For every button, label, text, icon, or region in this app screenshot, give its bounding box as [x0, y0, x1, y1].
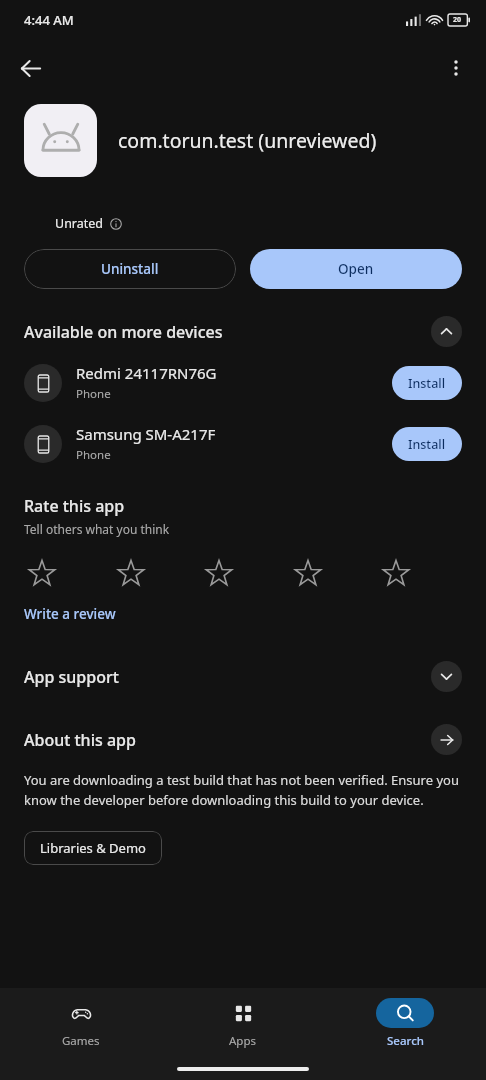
staticText: Samsung SM-A217F: [76, 424, 216, 444]
staticText: Tell others what you think: [24, 521, 170, 537]
staticText: 4:44 AM: [24, 11, 74, 29]
button[interactable]: Rate 4 star: [290, 555, 326, 591]
staticText: App support: [24, 666, 431, 688]
staticText: Install: [408, 375, 446, 392]
button[interactable]: Back: [10, 48, 50, 88]
staticText: About this app: [24, 729, 431, 751]
button[interactable]: App support: [0, 661, 486, 692]
button[interactable]: Samsung SM-A217F: [0, 424, 486, 463]
staticText: Apps: [229, 1033, 257, 1049]
button[interactable]: Expand app support: [431, 661, 462, 692]
staticText: Available on more devices: [24, 321, 431, 343]
staticText: You are downloading a test build that ha…: [24, 771, 462, 809]
button[interactable]: Rate 1 star: [24, 555, 60, 591]
staticText: Phone: [76, 447, 111, 463]
button[interactable]: Install: [392, 427, 462, 461]
button[interactable]: Rate 5 star: [378, 555, 414, 591]
button[interactable]: Apps: [162, 998, 324, 1049]
button[interactable]: Libraries & Demo: [24, 831, 162, 865]
button[interactable]: Uninstall: [24, 249, 236, 289]
staticText: com.torun.test (unreviewed): [118, 127, 377, 154]
button[interactable]: Open: [250, 249, 462, 289]
staticText: 20: [453, 15, 462, 25]
staticText: Install: [408, 436, 446, 453]
staticText: Open: [338, 260, 374, 278]
staticText: Libraries & Demo: [40, 839, 146, 857]
button[interactable]: Write a review: [24, 605, 116, 623]
button[interactable]: Rate 2 star: [113, 555, 149, 591]
button[interactable]: Redmi 24117RN76G: [0, 363, 486, 402]
button[interactable]: Available on more devices: [0, 316, 486, 347]
staticText: Search: [387, 1033, 424, 1049]
button[interactable]: Search: [324, 998, 486, 1049]
staticText: Uninstall: [101, 260, 159, 278]
button[interactable]: About this app: [431, 724, 462, 755]
staticText: Write a review: [24, 605, 116, 623]
button[interactable]: Rate 3 star: [201, 555, 237, 591]
staticText: Redmi 24117RN76G: [76, 363, 217, 383]
button[interactable]: Install: [392, 366, 462, 400]
staticText: Rate this app: [24, 495, 125, 517]
button[interactable]: More options: [436, 48, 476, 88]
staticText: Games: [62, 1033, 100, 1049]
button[interactable]: Games: [0, 998, 162, 1049]
button[interactable]: About this app: [0, 724, 486, 755]
button[interactable]: Collapse: [431, 316, 462, 347]
staticText: Unrated: [55, 215, 104, 232]
staticText: Phone: [76, 386, 111, 402]
